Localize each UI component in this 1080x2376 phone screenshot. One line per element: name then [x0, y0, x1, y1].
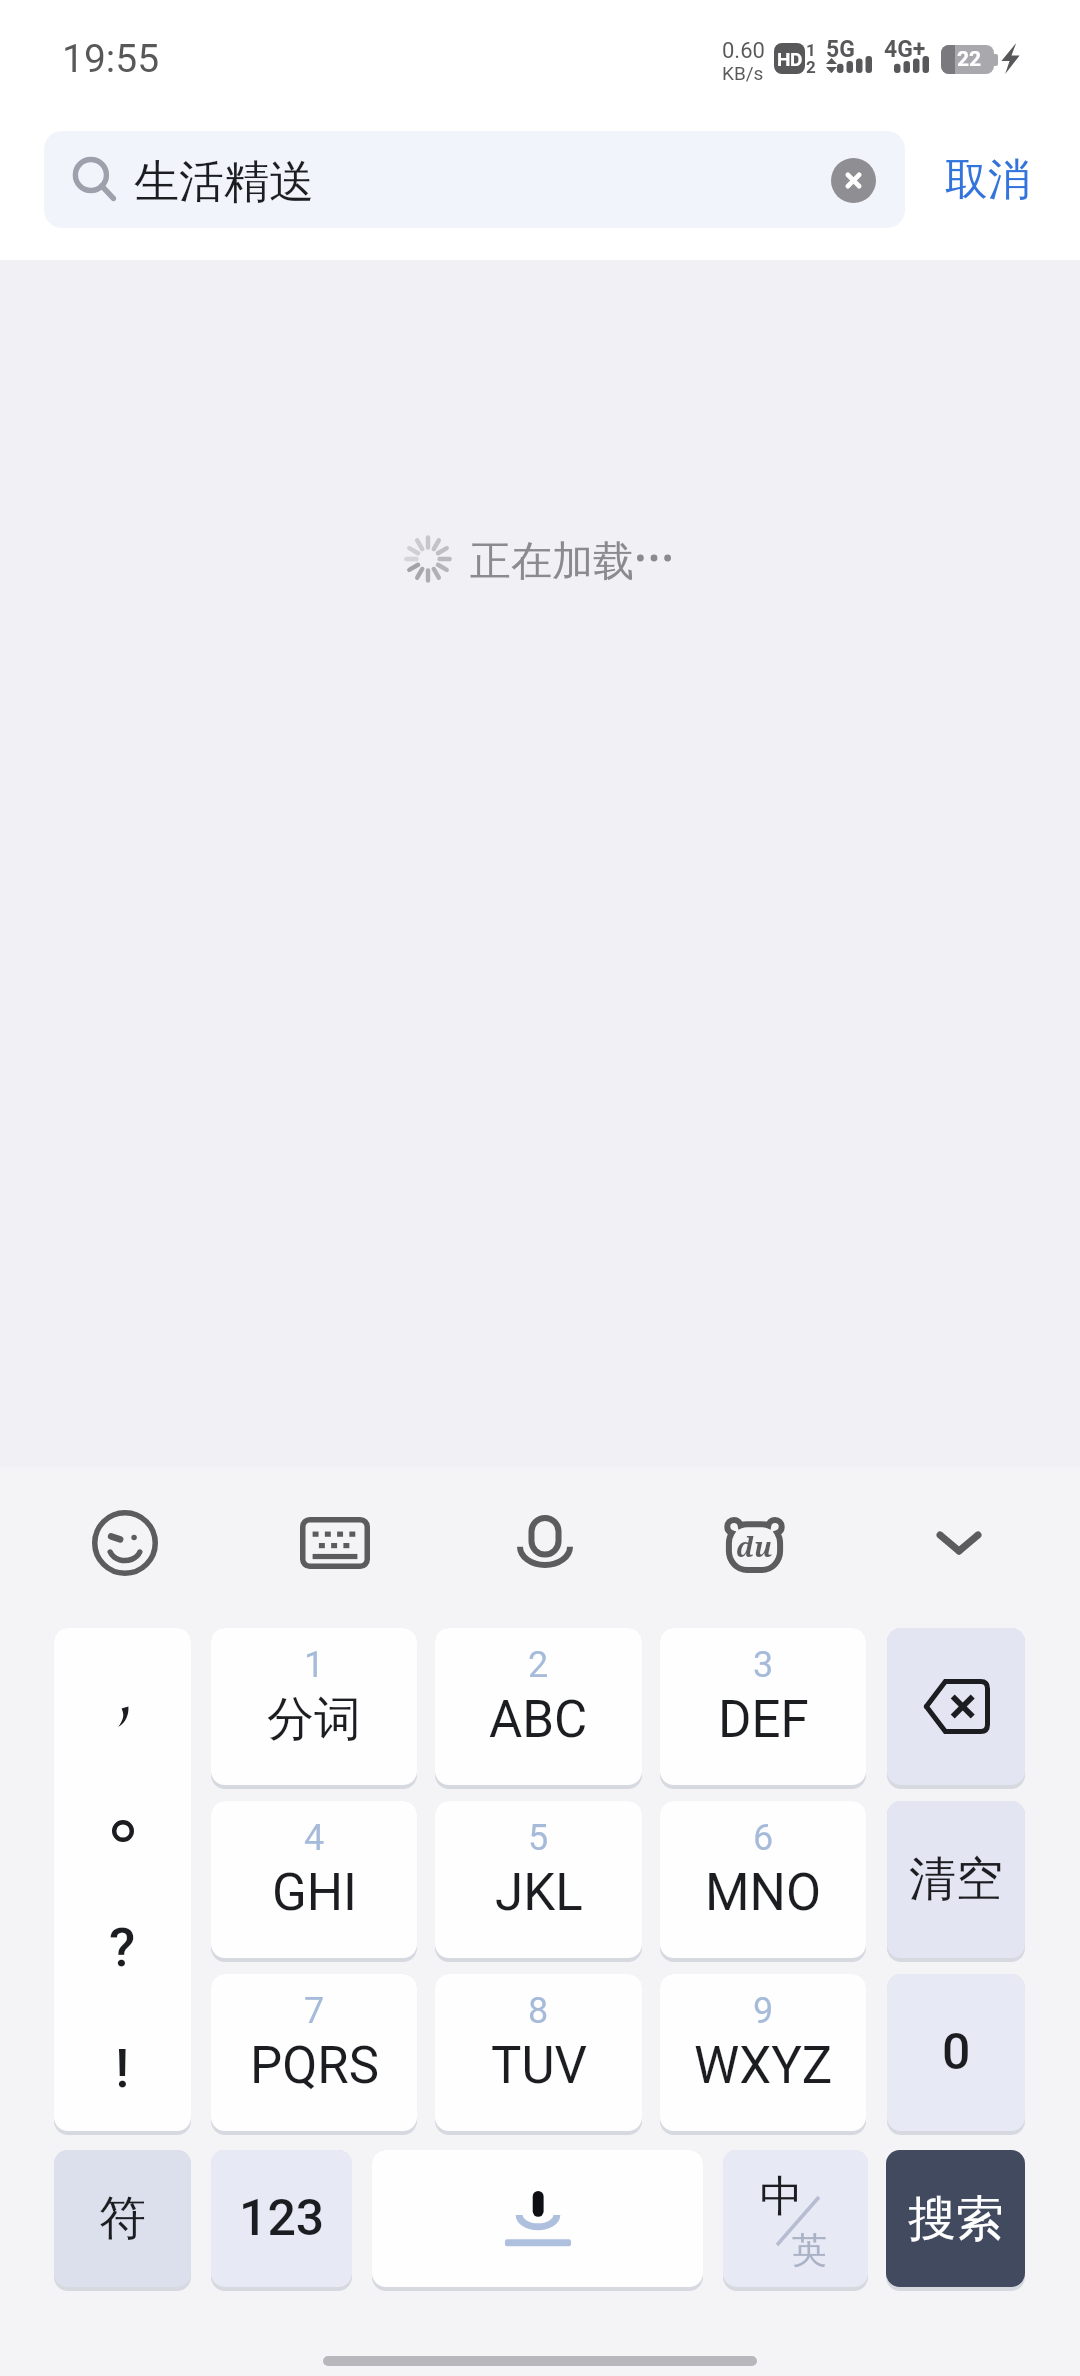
button[interactable]: Keyboard layout [280, 1488, 390, 1598]
staticText: 0 [942, 2023, 971, 2082]
staticText: MNO [705, 1863, 821, 1923]
staticText: 2 [528, 1644, 549, 1686]
button[interactable]: 2 [435, 1628, 642, 1785]
staticText: ! [115, 2037, 130, 2100]
button[interactable]: 搜索 [886, 2150, 1025, 2287]
staticText: 8 [528, 1990, 549, 2032]
button[interactable]: ! [54, 2002, 191, 2127]
button[interactable]: 4 [211, 1801, 417, 1958]
staticText: 4G+ [884, 36, 926, 63]
button[interactable]: 生活精送 [44, 131, 905, 228]
staticText: DEF [718, 1690, 809, 1750]
button[interactable]: Full stop [54, 1768, 191, 1893]
button[interactable]: Hide keyboard [904, 1488, 1014, 1598]
button[interactable]: 1 [211, 1628, 417, 1785]
staticText: GHI [272, 1863, 357, 1923]
button[interactable]: 中 [723, 2150, 868, 2287]
staticText: 9 [753, 1990, 774, 2032]
staticText: 3 [753, 1644, 774, 1686]
staticText: 正在加载 [470, 536, 634, 588]
button[interactable]: 7 [211, 1974, 417, 2131]
staticText: 分词 [267, 1690, 361, 1749]
staticText: 搜索 [908, 2189, 1004, 2249]
button[interactable]: Comma [54, 1654, 191, 1779]
button[interactable]: Backspace [887, 1628, 1025, 1785]
staticText: WXYZ [694, 2036, 833, 2096]
staticText: TUV [491, 2036, 587, 2096]
staticText: 0.60 [722, 38, 765, 64]
staticText: 1 [806, 40, 816, 60]
staticText: 123 [239, 2189, 325, 2248]
staticText: 英 [792, 2228, 827, 2272]
button[interactable]: 取消 [920, 131, 1055, 228]
staticText: 19:55 [62, 36, 160, 82]
staticText: PQRS [250, 2036, 379, 2096]
button[interactable]: Baidu [699, 1488, 809, 1598]
staticText: 1 [304, 1644, 325, 1686]
staticText: JKL [495, 1863, 583, 1923]
staticText: 符 [99, 2189, 146, 2248]
button[interactable]: Voice [490, 1488, 600, 1598]
staticText: ? [109, 1916, 136, 1979]
staticText: 清空 [909, 1850, 1003, 1909]
button[interactable]: 清空 [887, 1801, 1025, 1958]
button[interactable]: 8 [435, 1974, 642, 2131]
button[interactable]: Clear text [811, 138, 895, 222]
button[interactable]: ? [54, 1881, 191, 2006]
button[interactable]: 3 [660, 1628, 866, 1785]
staticText: 2 [806, 57, 816, 77]
button[interactable]: Voice input [372, 2150, 703, 2287]
staticText: 5 [528, 1817, 549, 1859]
button[interactable]: Comma [54, 1628, 191, 2131]
button[interactable]: 9 [660, 1974, 866, 2131]
button[interactable]: 6 [660, 1801, 866, 1958]
button[interactable]: 5 [435, 1801, 642, 1958]
button[interactable]: 0 [887, 1974, 1025, 2131]
staticText: 中 [760, 2170, 803, 2224]
staticText: 取消 [945, 153, 1031, 207]
staticText: 22 [957, 47, 982, 72]
staticText: 5G [826, 36, 855, 63]
staticText: 生活精送 [134, 154, 314, 211]
button[interactable]: 符 [54, 2150, 191, 2287]
staticText: du [736, 1528, 773, 1565]
button[interactable]: Emoji [70, 1488, 180, 1598]
staticText: ABC [489, 1690, 588, 1750]
button[interactable]: 123 [211, 2150, 352, 2287]
staticText: 7 [304, 1990, 325, 2032]
staticText: 4 [304, 1817, 325, 1859]
staticText: HD [777, 48, 802, 70]
staticText: 6 [753, 1817, 774, 1859]
staticText: KB/s [722, 62, 764, 84]
